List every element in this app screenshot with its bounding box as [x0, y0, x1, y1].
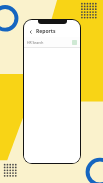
staticText: Reports: [36, 28, 56, 35]
staticText: HR Search: [27, 40, 44, 45]
button[interactable]: HR Search: [24, 37, 80, 47]
button[interactable]: Back: [27, 28, 34, 35]
